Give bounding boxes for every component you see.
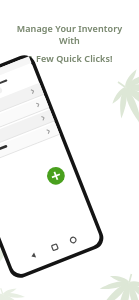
- staticText: A Few Quick Clicks!: [27, 52, 113, 64]
- staticText: Manage Your Inventory With: [10, 22, 129, 46]
- button[interactable]: Inventory app preview: [0, 0, 139, 300]
